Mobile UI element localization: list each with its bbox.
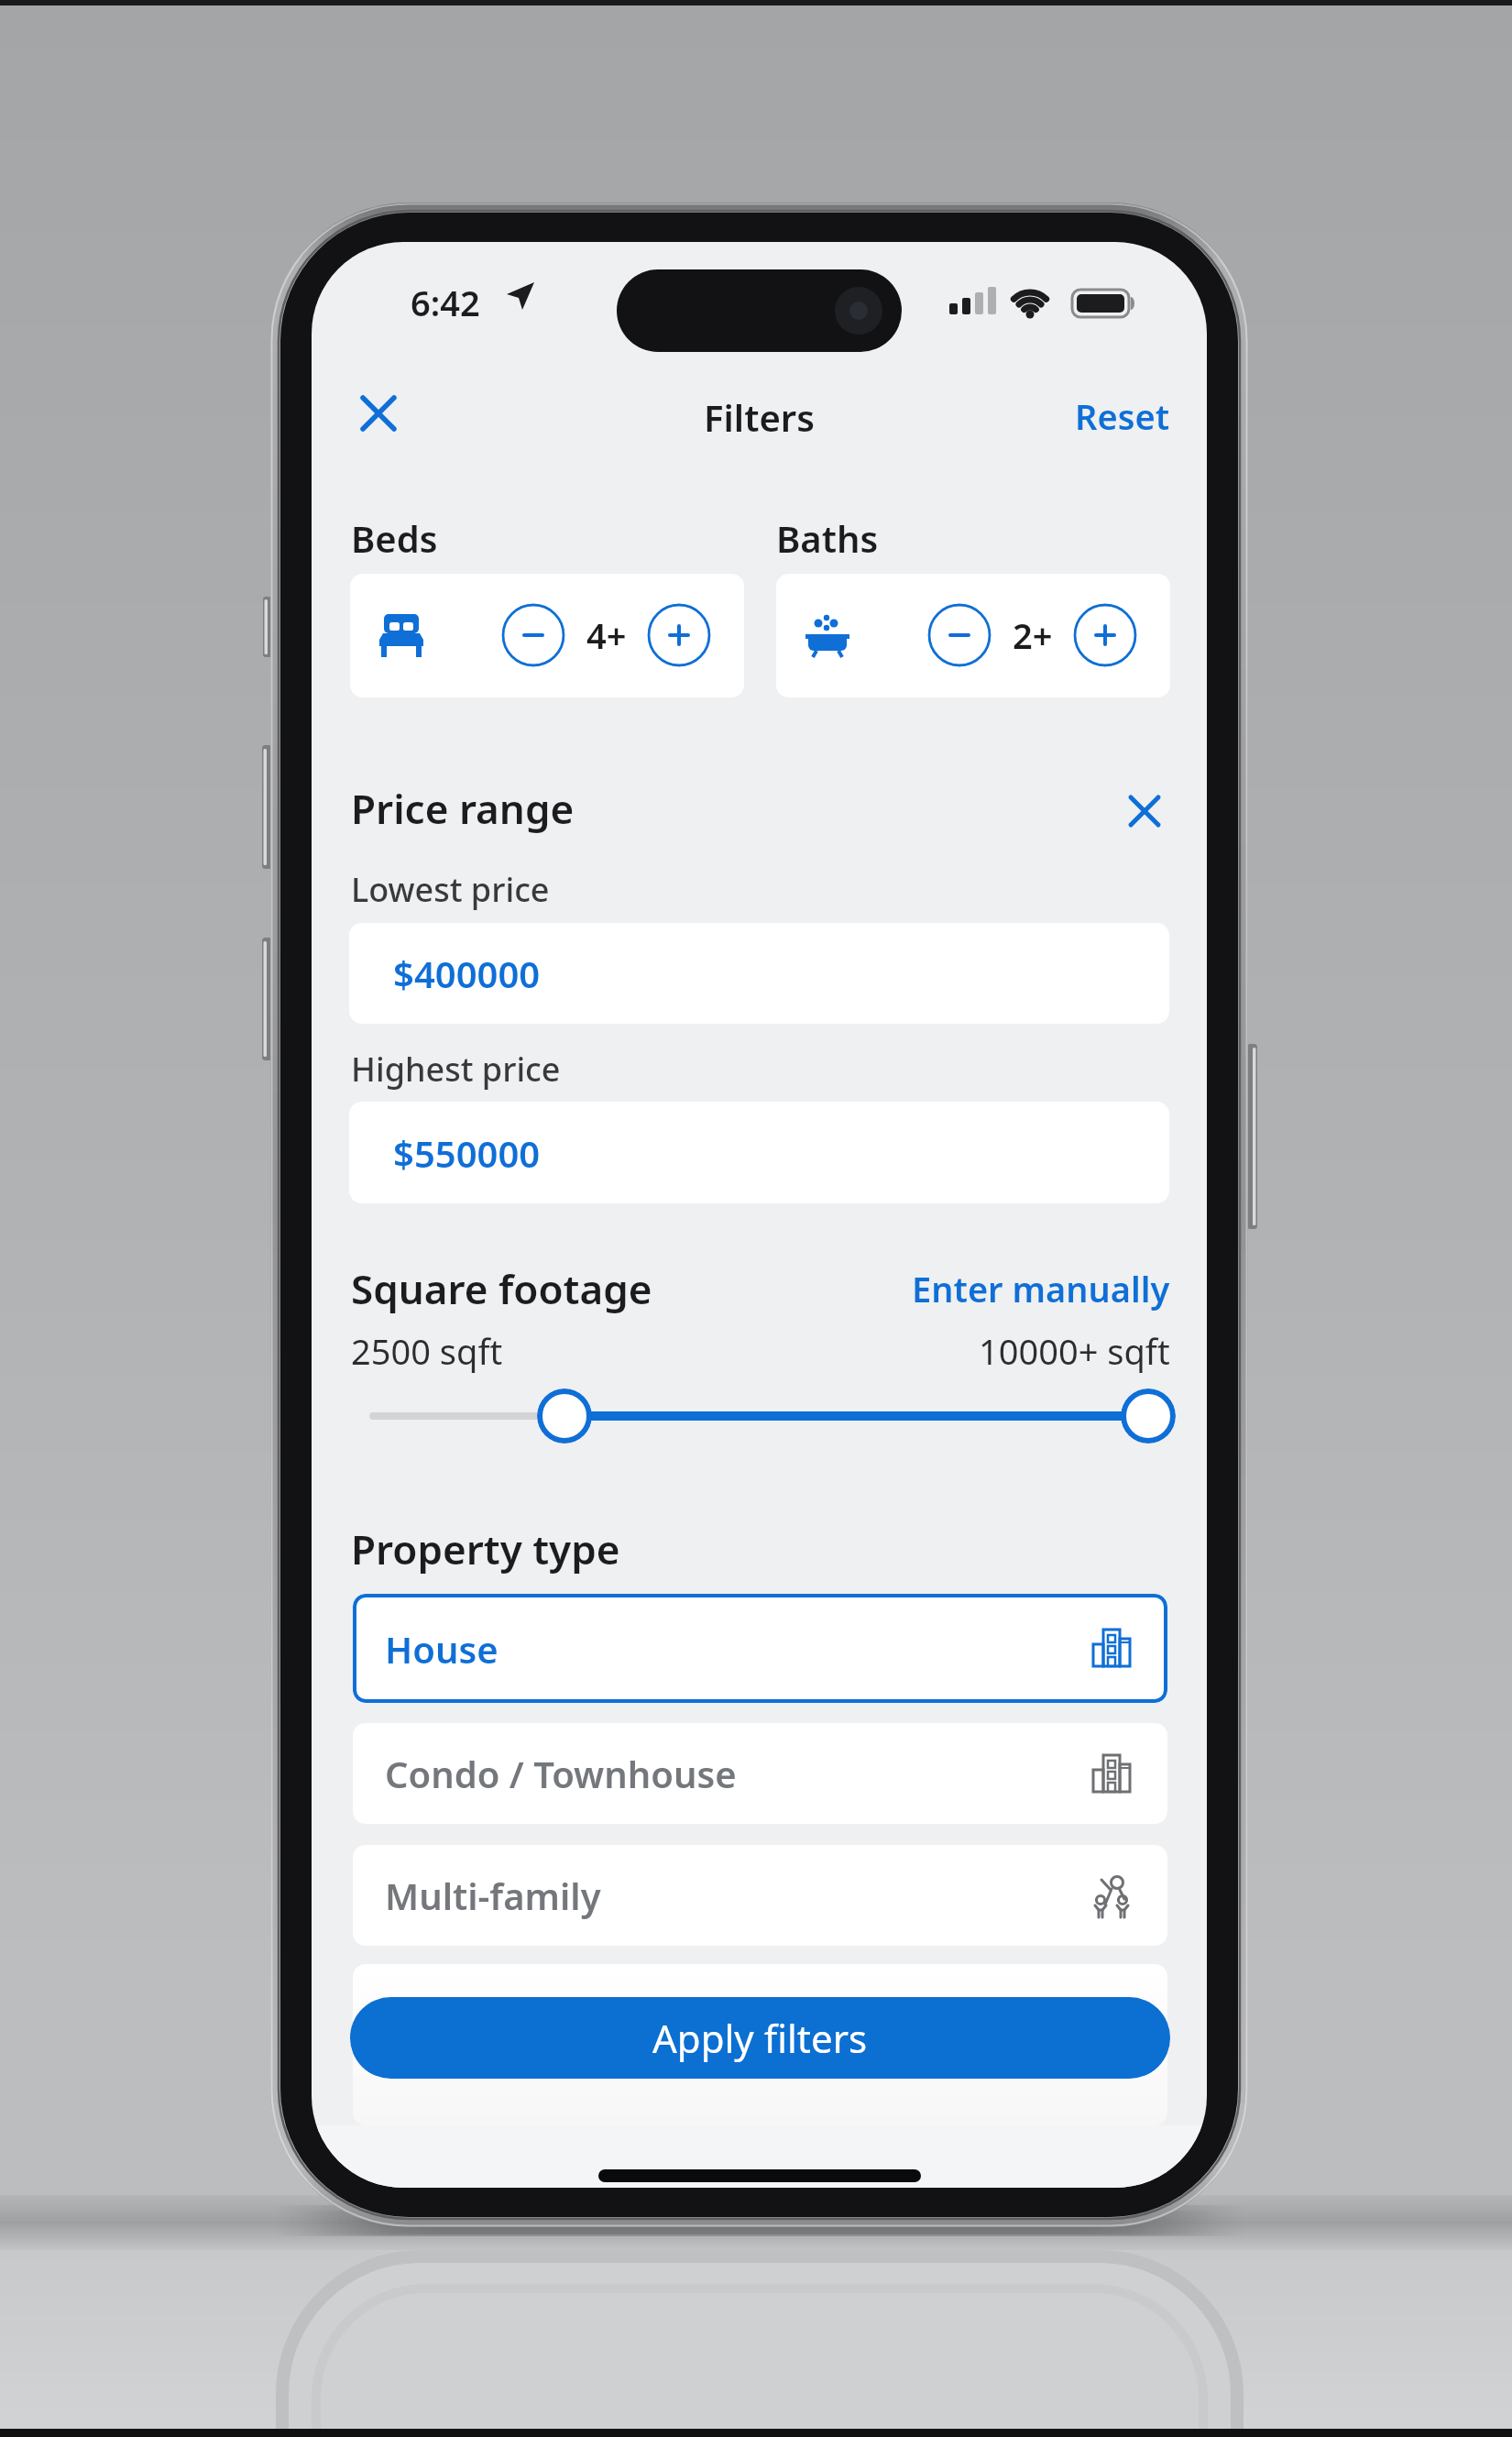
button[interactable]: Reset [1033, 392, 1170, 438]
button[interactable]: Enter manually [895, 1265, 1170, 1311]
staticText: House [385, 1624, 499, 1674]
staticText: 2500 sqft [351, 1327, 503, 1375]
staticText: Square footage [351, 1261, 652, 1316]
button[interactable] [1123, 790, 1166, 832]
button[interactable] [1073, 603, 1137, 667]
staticText: Multi-family [385, 1871, 601, 1920]
button[interactable] [537, 1389, 592, 1444]
staticText: Apply filters [652, 2012, 868, 2064]
staticText: Enter manually [912, 1265, 1170, 1311]
staticText: $550000 [393, 1128, 541, 1178]
staticText: Reset [1075, 392, 1170, 438]
button[interactable]: Multi-family [353, 1845, 1167, 1946]
staticText: Condo / Townhouse [385, 1749, 737, 1798]
staticText: Property type [351, 1521, 620, 1576]
button[interactable] [501, 603, 565, 667]
button[interactable] [647, 603, 711, 667]
staticText: 4+ [586, 611, 627, 659]
staticText: Lowest price [351, 867, 550, 912]
button[interactable]: Apply filters [350, 1997, 1170, 2079]
staticText: Filters [704, 392, 815, 438]
staticText: Beds [351, 513, 438, 563]
button[interactable]: House [353, 1594, 1167, 1703]
button[interactable]: Condo / Townhouse [353, 1723, 1167, 1824]
button[interactable]: $400000 [349, 923, 1169, 1024]
button[interactable] [360, 395, 400, 435]
button[interactable] [927, 603, 992, 667]
staticText: 6:42 [411, 279, 480, 326]
staticText: Highest price [351, 1047, 561, 1092]
staticText: Baths [776, 513, 879, 563]
button[interactable] [1121, 1389, 1176, 1444]
button[interactable]: $550000 [349, 1102, 1169, 1203]
staticText: 10000+ sqft [979, 1327, 1170, 1373]
staticText: 2+ [1013, 611, 1053, 659]
staticText: $400000 [393, 949, 541, 998]
staticText: Price range [351, 781, 575, 836]
